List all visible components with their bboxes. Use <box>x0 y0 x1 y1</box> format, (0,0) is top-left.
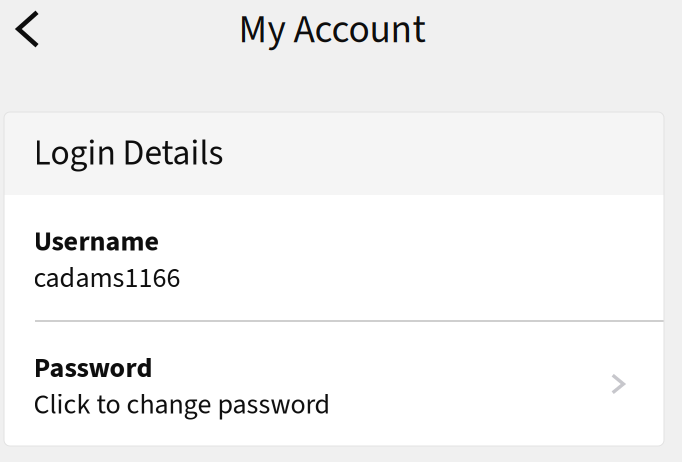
staticText: Click to change password <box>33 385 330 425</box>
staticText: cadams1166 <box>33 258 180 298</box>
staticText: Password <box>33 348 152 388</box>
button[interactable]: Back <box>0 0 55 58</box>
staticText: My Account <box>238 2 425 58</box>
button[interactable]: Password <box>4 322 664 446</box>
staticText: Username <box>33 222 159 262</box>
staticText: Login Details <box>33 128 223 179</box>
button[interactable]: Username <box>4 195 664 320</box>
